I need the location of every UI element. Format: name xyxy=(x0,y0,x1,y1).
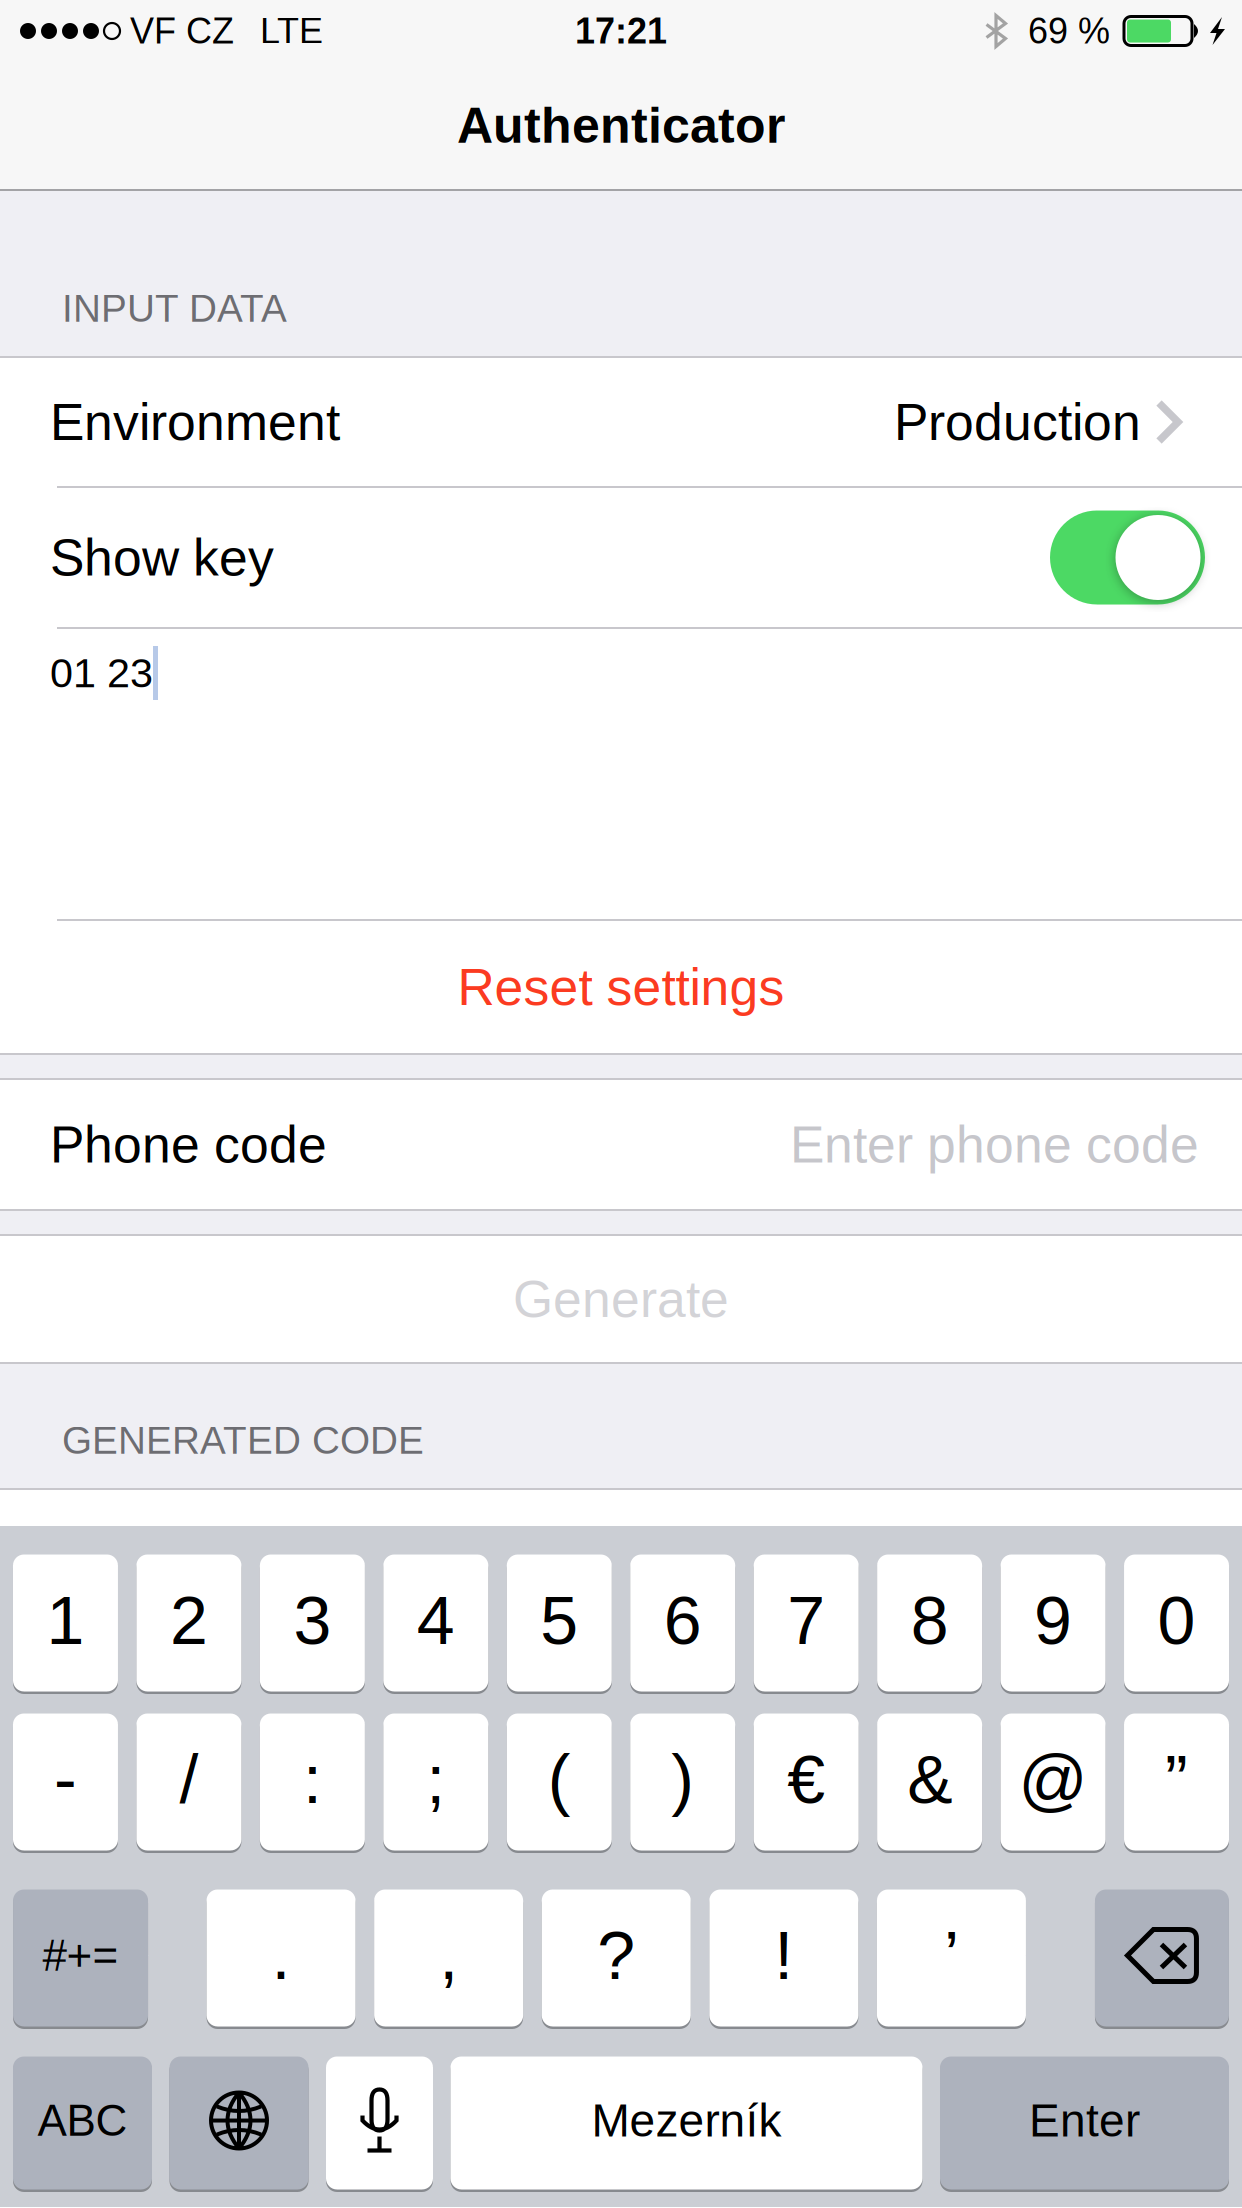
staticText: & xyxy=(907,1741,952,1817)
staticText: 69 % xyxy=(1028,11,1110,51)
staticText: , xyxy=(439,1917,458,1993)
staticText: 17:21 xyxy=(575,11,667,51)
button[interactable]: - xyxy=(13,1711,118,1848)
staticText: 4 xyxy=(417,1582,455,1658)
staticText: . xyxy=(271,1917,290,1993)
button[interactable]: Generate xyxy=(0,1236,1242,1362)
staticText: Show key xyxy=(50,529,274,586)
staticText: 1 xyxy=(46,1582,84,1658)
button[interactable]: 6 xyxy=(630,1552,735,1689)
button[interactable]: @ xyxy=(1001,1711,1106,1848)
button[interactable]: Delete xyxy=(1095,1887,1229,2024)
button[interactable]: : xyxy=(260,1711,365,1848)
staticText: 6 xyxy=(664,1582,702,1658)
staticText: 7 xyxy=(787,1582,825,1658)
button[interactable]: Environment xyxy=(0,358,1242,486)
button[interactable]: 3 xyxy=(260,1552,365,1689)
staticText: ” xyxy=(1165,1741,1188,1817)
button[interactable]: Enter xyxy=(940,2054,1229,2187)
staticText: LTE xyxy=(260,11,323,51)
staticText: Generate xyxy=(513,1270,729,1328)
button[interactable]: 0 xyxy=(1124,1552,1229,1689)
staticText: - xyxy=(54,1741,77,1817)
staticText: Enter phone code xyxy=(790,1116,1199,1173)
button[interactable]: 7 xyxy=(754,1552,859,1689)
staticText: ( xyxy=(548,1741,571,1817)
staticText: #+= xyxy=(42,1931,118,1980)
staticText: ’ xyxy=(944,1917,959,1993)
staticText: 8 xyxy=(911,1582,949,1658)
staticText: 2 xyxy=(170,1582,208,1658)
button[interactable]: 4 xyxy=(383,1552,488,1689)
staticText: ! xyxy=(774,1917,793,1993)
staticText: Enter xyxy=(1029,2095,1140,2146)
staticText: 01 23 xyxy=(50,650,153,696)
staticText: 9 xyxy=(1034,1582,1072,1658)
staticText: ; xyxy=(426,1741,445,1817)
staticText: @ xyxy=(1019,1741,1088,1817)
button[interactable]: ? xyxy=(542,1887,691,2024)
button[interactable]: Mezerník xyxy=(450,2054,922,2187)
button[interactable]: Phone code xyxy=(0,1080,1242,1209)
button[interactable]: / xyxy=(136,1711,241,1848)
button[interactable]: ’ xyxy=(877,1887,1026,2024)
button[interactable]: 1 xyxy=(13,1552,118,1689)
staticText: Mezerník xyxy=(591,2095,781,2146)
button[interactable]: Dictate xyxy=(326,2054,433,2187)
button[interactable]: 8 xyxy=(877,1552,982,1689)
button[interactable]: 01 23 xyxy=(0,629,1242,919)
button[interactable]: ABC xyxy=(13,2054,152,2187)
button[interactable]: Next keyboard xyxy=(169,2054,308,2187)
button[interactable]: ( xyxy=(507,1711,612,1848)
staticText: GENERATED CODE xyxy=(62,1419,424,1462)
button[interactable]: Reset settings xyxy=(0,921,1242,1053)
staticText: ? xyxy=(597,1917,635,1993)
button[interactable]: 5 xyxy=(507,1552,612,1689)
button[interactable]: . xyxy=(206,1887,355,2024)
staticText: 5 xyxy=(540,1582,578,1658)
button[interactable]: Show key xyxy=(0,488,1242,627)
button[interactable]: ” xyxy=(1124,1711,1229,1848)
button[interactable]: ; xyxy=(383,1711,488,1848)
button[interactable]: ! xyxy=(709,1887,858,2024)
staticText: 0 xyxy=(1157,1582,1195,1658)
staticText: Phone code xyxy=(50,1116,327,1173)
staticText: 3 xyxy=(293,1582,331,1658)
staticText: : xyxy=(303,1741,322,1817)
button[interactable]: 9 xyxy=(1001,1552,1106,1689)
button[interactable]: #+= xyxy=(13,1887,148,2024)
button[interactable]: , xyxy=(374,1887,523,2024)
staticText: Authenticator xyxy=(457,98,785,153)
button[interactable]: 2 xyxy=(136,1552,241,1689)
staticText: VF CZ xyxy=(130,11,234,51)
staticText: INPUT DATA xyxy=(62,287,287,330)
staticText: Production xyxy=(894,393,1141,451)
staticText: Reset settings xyxy=(457,958,784,1016)
staticText: Environment xyxy=(50,393,340,451)
staticText: ABC xyxy=(37,2096,127,2145)
button[interactable]: ) xyxy=(630,1711,735,1848)
staticText: / xyxy=(179,1741,198,1817)
button[interactable]: € xyxy=(754,1711,859,1848)
staticText: ) xyxy=(671,1741,694,1817)
staticText: € xyxy=(787,1741,825,1817)
button[interactable]: & xyxy=(877,1711,982,1848)
